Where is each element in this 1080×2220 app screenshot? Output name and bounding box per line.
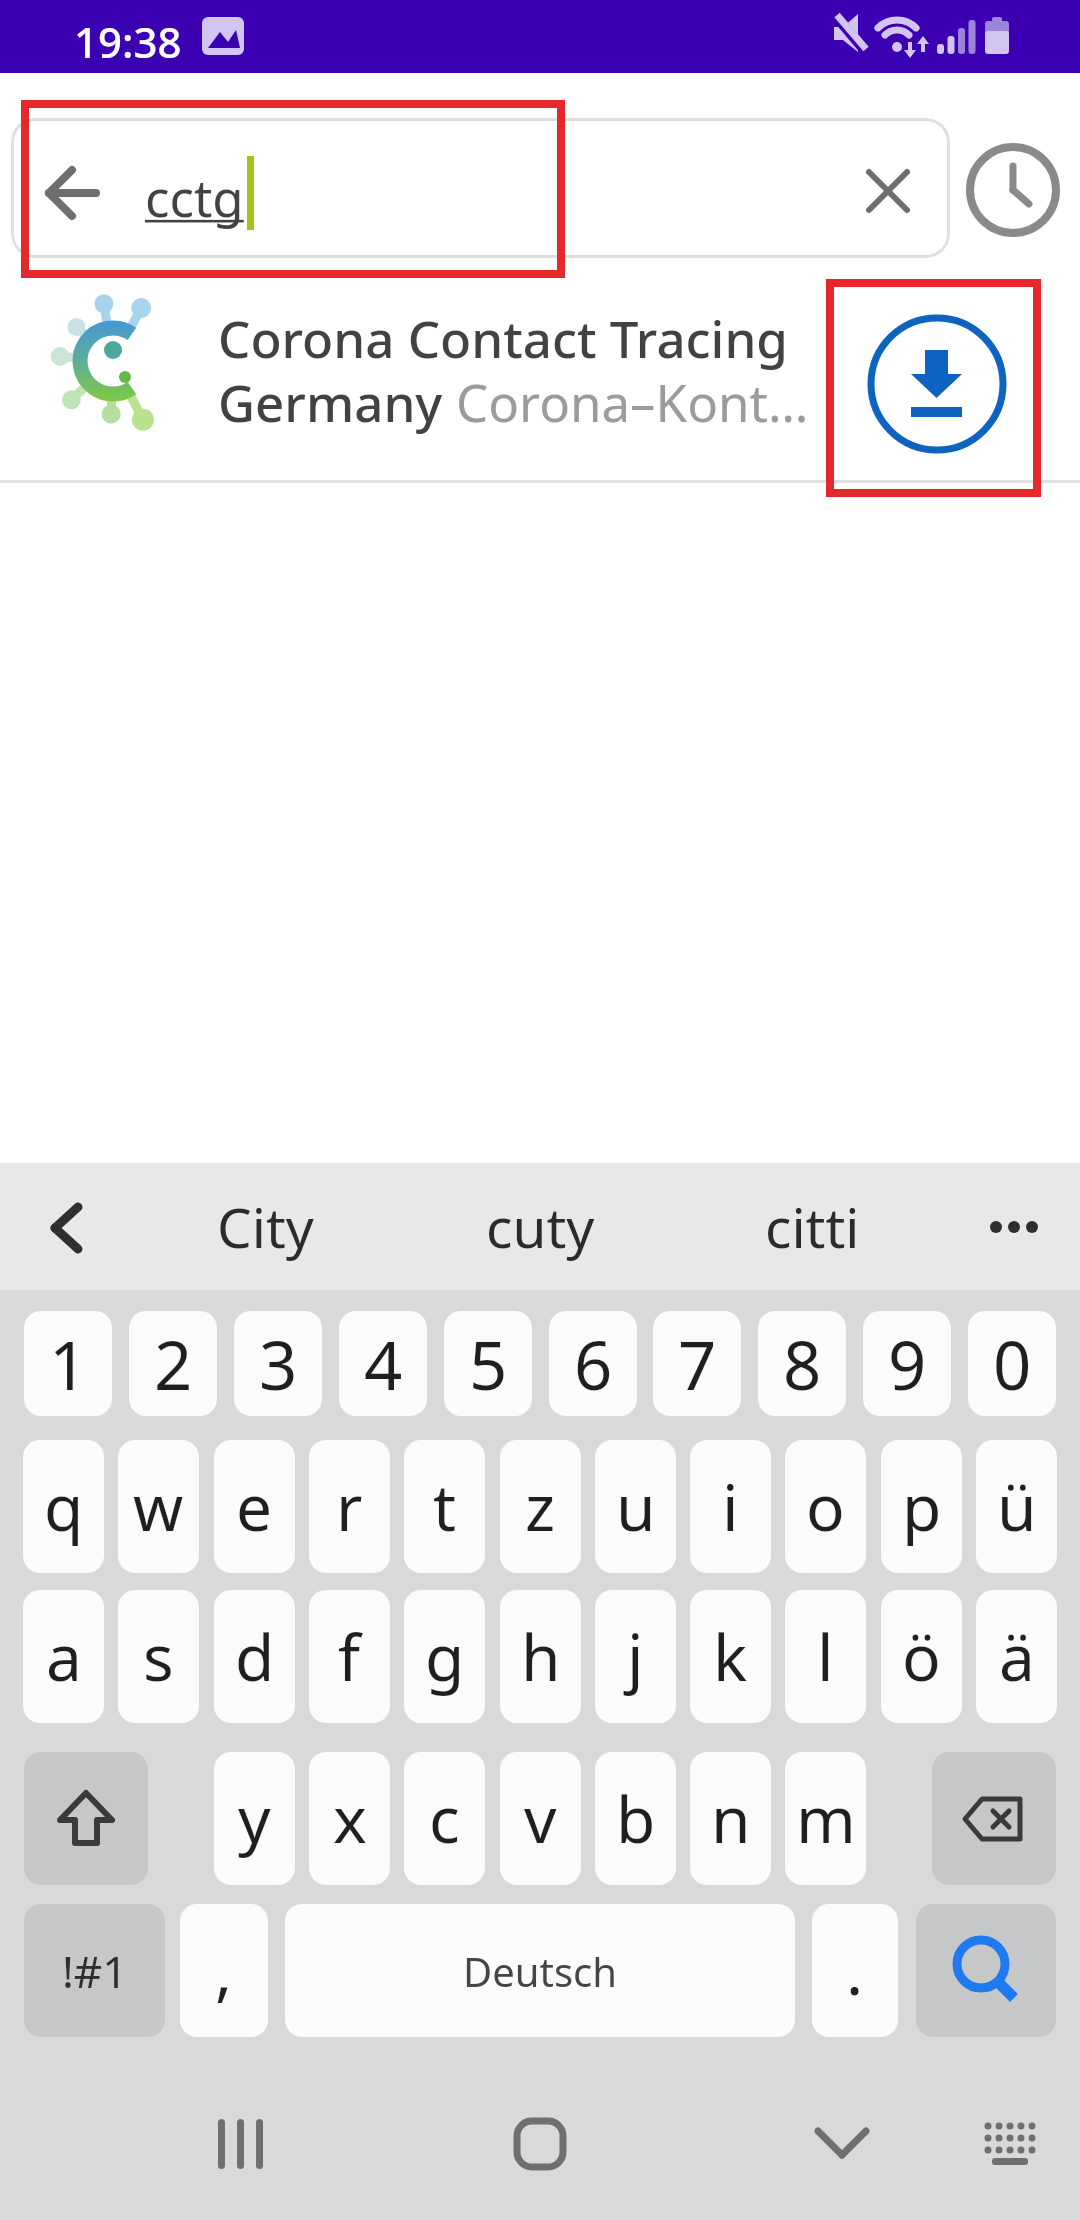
button[interactable]: e <box>214 1440 295 1573</box>
staticText: o <box>806 1463 845 1550</box>
staticText: r <box>336 1463 363 1550</box>
button[interactable] <box>24 1752 148 1885</box>
button[interactable]: v <box>500 1752 581 1885</box>
staticText: i <box>722 1463 739 1550</box>
staticText: cuty <box>486 1189 595 1264</box>
staticText: , <box>215 1927 233 2014</box>
button[interactable] <box>22 1180 112 1272</box>
staticText: 1 <box>49 1318 88 1409</box>
button[interactable]: m <box>785 1752 866 1885</box>
button[interactable] <box>916 1904 1056 2037</box>
staticText: g <box>425 1613 465 1700</box>
button[interactable]: d <box>214 1590 295 1723</box>
button[interactable]: h <box>500 1590 581 1723</box>
button[interactable]: cctg <box>11 118 950 258</box>
staticText: . <box>846 1927 864 2014</box>
staticText: n <box>711 1775 751 1862</box>
button[interactable] <box>867 314 1007 454</box>
button[interactable] <box>960 2095 1060 2190</box>
button[interactable]: g <box>404 1590 485 1723</box>
staticText: u <box>616 1463 656 1550</box>
staticText: 19:38 <box>74 13 182 70</box>
button[interactable]: j <box>595 1590 676 1723</box>
button[interactable]: . <box>812 1904 898 2037</box>
button[interactable]: k <box>690 1590 771 1723</box>
staticText: citti <box>765 1189 860 1264</box>
staticText: a <box>46 1613 82 1700</box>
button[interactable]: y <box>214 1752 295 1885</box>
button[interactable]: s <box>118 1590 199 1723</box>
button[interactable]: 8 <box>758 1311 846 1416</box>
button[interactable]: b <box>595 1752 676 1885</box>
staticText: j <box>627 1613 644 1700</box>
button[interactable]: t <box>404 1440 485 1573</box>
button[interactable]: 5 <box>444 1311 532 1416</box>
button[interactable]: ü <box>976 1440 1057 1573</box>
staticText: l <box>817 1613 834 1700</box>
button[interactable]: 3 <box>234 1311 322 1416</box>
button[interactable]: f <box>309 1590 390 1723</box>
button[interactable]: u <box>595 1440 676 1573</box>
staticText: d <box>235 1613 275 1700</box>
staticText: ü <box>997 1463 1037 1550</box>
staticText: e <box>236 1463 273 1550</box>
button[interactable]: 4 <box>339 1311 427 1416</box>
staticText: ä <box>999 1613 1035 1700</box>
staticText: 2 <box>154 1318 193 1409</box>
button[interactable]: cuty <box>430 1163 650 1290</box>
button[interactable]: a <box>23 1590 104 1723</box>
button[interactable]: ä <box>976 1590 1057 1723</box>
button[interactable] <box>792 2095 892 2190</box>
staticText: f <box>338 1613 361 1700</box>
staticText: t <box>433 1463 457 1550</box>
staticText: v <box>524 1775 557 1862</box>
button[interactable]: q <box>23 1440 104 1573</box>
staticText: m <box>796 1775 856 1862</box>
button[interactable] <box>932 1752 1056 1885</box>
staticText: b <box>616 1775 656 1862</box>
button[interactable]: citti <box>702 1163 922 1290</box>
button[interactable]: n <box>690 1752 771 1885</box>
staticText: 5 <box>469 1318 508 1409</box>
staticText: 4 <box>364 1318 403 1409</box>
staticText: k <box>713 1613 748 1700</box>
button[interactable]: City <box>155 1163 375 1290</box>
staticText: x <box>333 1775 367 1862</box>
button[interactable]: 0 <box>968 1311 1056 1416</box>
button[interactable] <box>185 2095 290 2195</box>
button[interactable]: 1 <box>24 1311 112 1416</box>
button[interactable]: 6 <box>549 1311 637 1416</box>
staticText: 9 <box>888 1318 927 1409</box>
staticText: Deutsch <box>463 1944 617 1998</box>
button[interactable]: !#1 <box>24 1904 165 2037</box>
button[interactable]: x <box>309 1752 390 1885</box>
button[interactable]: 9 <box>863 1311 951 1416</box>
button[interactable]: Corona Contact Tracing <box>0 283 1080 481</box>
button[interactable]: c <box>404 1752 485 1885</box>
staticText: w <box>133 1463 184 1550</box>
button[interactable]: 7 <box>653 1311 741 1416</box>
staticText: 0 <box>993 1318 1032 1409</box>
button[interactable]: i <box>690 1440 771 1573</box>
button[interactable]: l <box>785 1590 866 1723</box>
button[interactable]: p <box>881 1440 962 1573</box>
staticText: cctg <box>145 162 244 231</box>
staticText: 7 <box>678 1318 717 1409</box>
button[interactable]: r <box>309 1440 390 1573</box>
button[interactable]: o <box>785 1440 866 1573</box>
staticText: 3 <box>259 1318 298 1409</box>
button[interactable] <box>969 146 1057 234</box>
staticText: h <box>521 1613 561 1700</box>
staticText: !#1 <box>62 1941 128 2001</box>
button[interactable]: w <box>118 1440 199 1573</box>
button[interactable]: , <box>180 1904 268 2037</box>
button[interactable] <box>965 1182 1057 1272</box>
button[interactable]: Deutsch <box>285 1904 795 2037</box>
button[interactable]: 2 <box>129 1311 217 1416</box>
staticText: q <box>44 1463 84 1550</box>
button[interactable] <box>488 2095 593 2195</box>
button[interactable]: z <box>500 1440 581 1573</box>
staticText: 8 <box>783 1318 822 1409</box>
staticText: Corona Contact Tracing <box>218 303 788 372</box>
button[interactable]: ö <box>881 1590 962 1723</box>
